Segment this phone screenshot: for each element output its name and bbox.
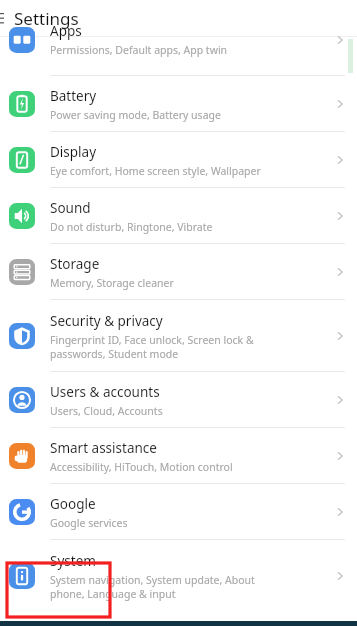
button[interactable]: Storage: [0, 244, 357, 300]
staticText: Do not disturb, Ringtone, Vibrate: [50, 220, 213, 234]
button[interactable]: Apps: [0, 37, 357, 76]
staticText: Battery: [50, 87, 97, 105]
other: Open Storage: [333, 265, 347, 279]
staticText: Permissions, Default apps, App twin: [50, 43, 228, 57]
staticText: System navigation, System update, About …: [50, 573, 255, 601]
button[interactable]: Security & privacy: [0, 300, 357, 372]
button[interactable]: Display: [0, 132, 357, 188]
staticText: Users & accounts: [50, 383, 160, 401]
staticText: Fingerprint ID, Face unlock, Screen lock…: [50, 333, 254, 361]
staticText: Storage: [50, 255, 100, 273]
staticText: Apps: [50, 22, 82, 40]
staticText: Users, Cloud, Accounts: [50, 404, 163, 418]
other: Open Battery: [333, 97, 347, 111]
staticText: Display: [50, 143, 97, 161]
other: Open Smart assistance: [333, 449, 347, 463]
button[interactable]: Smart assistance: [0, 428, 357, 484]
button[interactable]: System: [0, 540, 357, 612]
other: Open Apps: [333, 33, 347, 47]
staticText: Google: [50, 495, 96, 513]
staticText: Power saving mode, Battery usage: [50, 108, 221, 122]
other: Open Google: [333, 505, 347, 519]
button[interactable]: Sound: [0, 188, 357, 244]
staticText: Settings: [14, 7, 79, 30]
staticText: Eye comfort, Home screen style, Wallpape…: [50, 164, 261, 178]
other: Open Display: [333, 153, 347, 167]
button[interactable]: Users & accounts: [0, 372, 357, 428]
staticText: Accessibility, HiTouch, Motion control: [50, 460, 233, 474]
staticText: System: [50, 552, 96, 570]
other: Open Sound: [333, 209, 347, 223]
staticText: Google services: [50, 516, 128, 530]
staticText: Security & privacy: [50, 312, 163, 330]
button[interactable]: Google: [0, 484, 357, 540]
other: Open Users & accounts: [333, 393, 347, 407]
staticText: Memory, Storage cleaner: [50, 276, 174, 290]
other: Open System: [333, 569, 347, 583]
staticText: Sound: [50, 199, 91, 217]
staticText: Smart assistance: [50, 439, 157, 457]
button[interactable]: Battery: [0, 76, 357, 132]
other: Open Security & privacy: [333, 329, 347, 343]
